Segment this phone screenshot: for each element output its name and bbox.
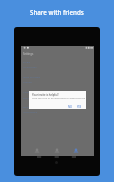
button[interactable]: Security bbox=[23, 106, 32, 109]
staticText: Security bbox=[23, 106, 32, 109]
staticText: Your invite is helpful! bbox=[32, 93, 59, 97]
button[interactable]: Account info bbox=[23, 66, 37, 69]
button[interactable]: NO bbox=[67, 105, 73, 108]
staticText: Storage bbox=[23, 97, 32, 100]
button[interactable]: Invite to folders bbox=[23, 76, 41, 79]
staticText: About device bbox=[23, 111, 37, 114]
button[interactable]: Home bbox=[33, 147, 41, 155]
staticText: Invite to folders bbox=[23, 76, 41, 79]
button[interactable]: Connect bbox=[23, 81, 32, 84]
button[interactable]: Storage bbox=[23, 97, 32, 100]
staticText: Settings bbox=[23, 52, 34, 56]
staticText: Click the Link to be applicable to downl… bbox=[32, 96, 89, 99]
staticText: Notifications bbox=[23, 91, 37, 94]
staticText: Profile bbox=[23, 61, 30, 64]
button[interactable]: Search bbox=[53, 147, 61, 155]
staticText: Account info bbox=[23, 66, 37, 69]
staticText: Connect bbox=[23, 81, 32, 84]
button[interactable]: Profile bbox=[23, 61, 30, 64]
staticText: Share with friends bbox=[30, 8, 84, 16]
button[interactable]: Profile bbox=[72, 147, 80, 155]
button[interactable]: About device bbox=[23, 111, 37, 114]
button[interactable]: YES bbox=[76, 105, 83, 108]
button[interactable]: Notifications bbox=[23, 91, 37, 94]
